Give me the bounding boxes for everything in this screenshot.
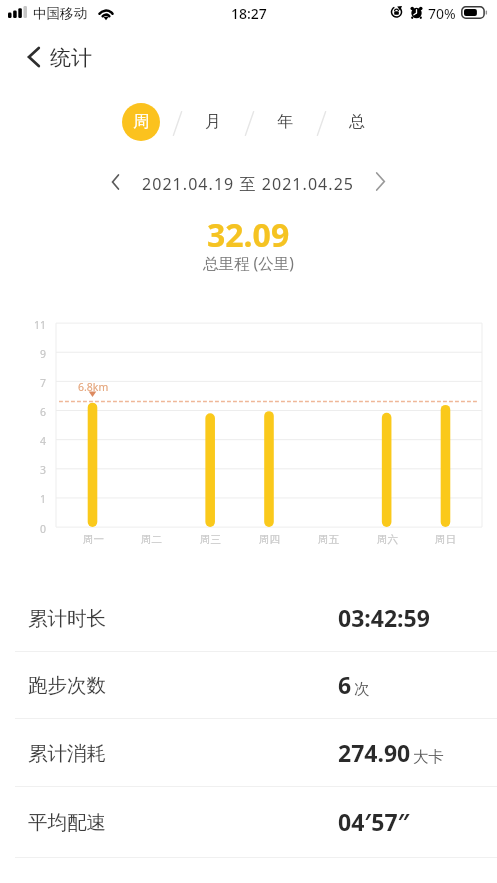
staticText: 中国移动 xyxy=(33,5,87,22)
staticText: 6 xyxy=(40,405,47,419)
staticText: 70% xyxy=(428,4,456,23)
button[interactable]: 月 xyxy=(194,103,232,141)
staticText: 11 xyxy=(34,318,47,332)
button[interactable]: 累计时长 xyxy=(0,585,497,652)
staticText: 周日 xyxy=(435,533,456,546)
staticText: 平均配速 xyxy=(28,810,106,835)
staticText: 9 xyxy=(40,347,47,361)
button[interactable]: Back xyxy=(16,41,52,73)
staticText: 年 xyxy=(277,112,293,132)
staticText: 2021.04.19 至 2021.04.25 xyxy=(142,173,355,195)
staticText: 统计 xyxy=(50,45,92,71)
staticText: 周二 xyxy=(141,533,162,546)
staticText: 274.90 xyxy=(338,737,411,768)
staticText: 0 xyxy=(40,522,47,536)
staticText: 周四 xyxy=(259,533,280,546)
staticText: 跑步次数 xyxy=(28,673,106,698)
staticText: 03:42:59 xyxy=(338,602,430,633)
staticText: 周六 xyxy=(377,533,398,546)
staticText: 1 xyxy=(40,492,47,506)
staticText: 次 xyxy=(354,679,370,699)
staticText: 7 xyxy=(40,376,47,390)
button[interactable]: 累计消耗 xyxy=(0,719,497,787)
staticText: 周 xyxy=(133,112,149,132)
button[interactable]: Previous week xyxy=(99,168,131,196)
staticText: 总里程 (公里) xyxy=(203,252,294,273)
button[interactable]: 总 xyxy=(338,103,376,141)
staticText: 04′57″ xyxy=(338,806,410,837)
staticText: 18:27 xyxy=(231,4,267,23)
staticText: 周五 xyxy=(318,533,339,546)
button[interactable]: Next week xyxy=(364,167,396,195)
button[interactable]: 年 xyxy=(266,103,304,141)
staticText: 3 xyxy=(40,463,47,477)
staticText: 4 xyxy=(40,434,47,448)
staticText: 周一 xyxy=(83,533,104,546)
button[interactable]: 周 xyxy=(122,103,160,141)
staticText: 32.09 xyxy=(207,213,290,257)
button[interactable]: 跑步次数 xyxy=(0,652,497,719)
staticText: 周三 xyxy=(200,533,221,546)
staticText: 总 xyxy=(349,112,365,132)
staticText: 大卡 xyxy=(413,747,444,767)
staticText: 6 xyxy=(338,669,352,700)
staticText: 6.8km xyxy=(78,380,109,394)
button[interactable]: 平均配速 xyxy=(0,786,497,858)
staticText: 累计时长 xyxy=(28,606,106,631)
staticText: 累计消耗 xyxy=(28,741,106,766)
staticText: 月 xyxy=(205,112,221,132)
